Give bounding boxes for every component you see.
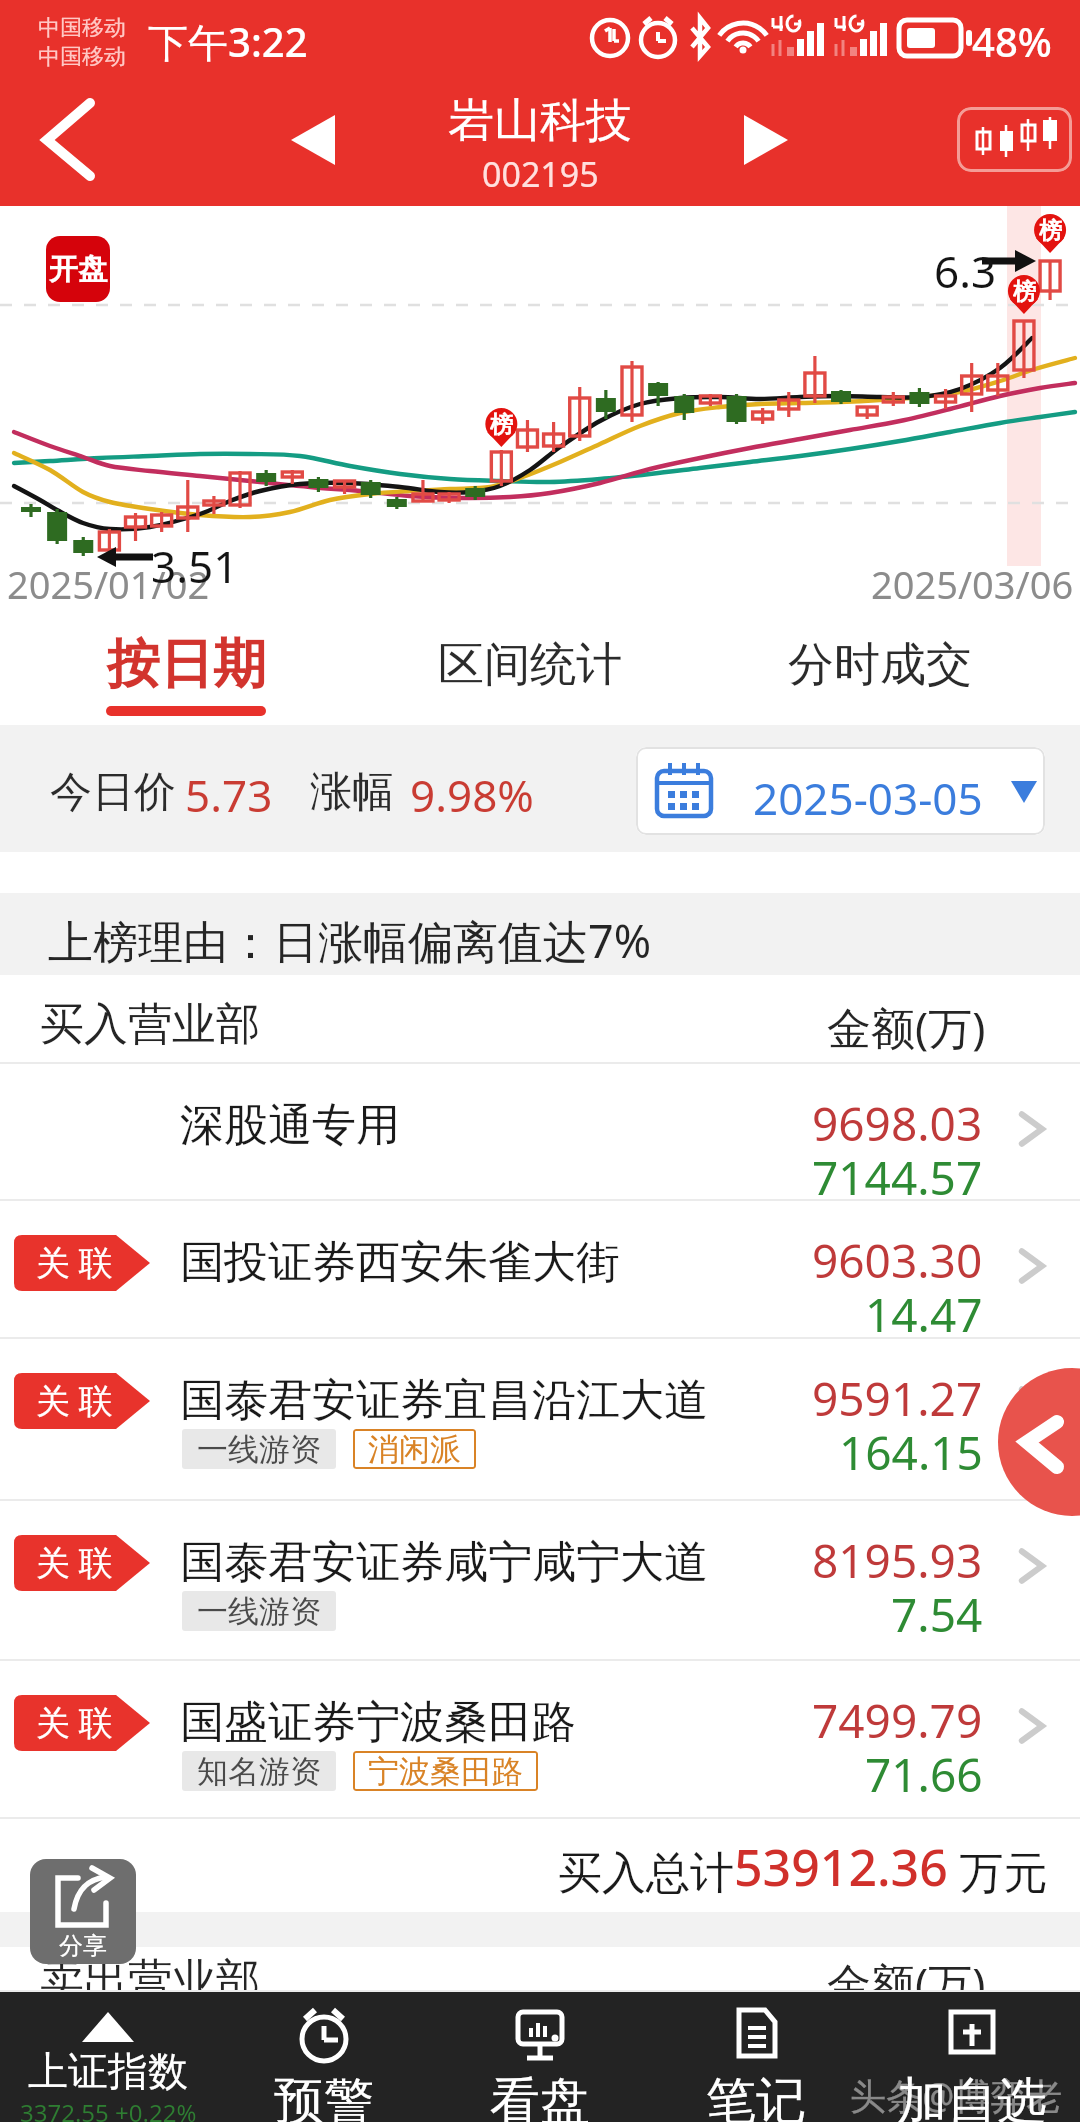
staticText: 榜 [1039, 216, 1062, 244]
button[interactable]: 收起 [998, 1368, 1080, 1516]
staticText: 岩山科技 [448, 92, 632, 150]
staticText: 知名游资 [197, 1752, 321, 1791]
staticText: 下午3:22 [148, 14, 308, 69]
button[interactable]: 关 联 [0, 1339, 1080, 1501]
staticText: 按日期 [107, 631, 266, 698]
staticText: 看盘 [490, 2070, 590, 2122]
button[interactable]: 分享 [30, 1859, 136, 1964]
staticText: 7144.57 [812, 1146, 983, 1209]
staticText: 涨幅 [310, 766, 394, 819]
staticText: 国盛证券宁波桑田路 [180, 1695, 576, 1750]
staticText: 53912.36 [734, 1833, 948, 1901]
staticText: 9.98% [410, 765, 534, 825]
staticText: 2025/01/02 [7, 558, 210, 610]
staticText: 关 联 [36, 1239, 113, 1285]
staticText: 中国移动 [38, 43, 126, 71]
staticText: 7.54 [891, 1583, 983, 1646]
staticText: 消闲派 [368, 1430, 461, 1469]
staticText: 164.15 [839, 1421, 983, 1484]
staticText: 9603.30 [812, 1229, 983, 1292]
staticText: 上榜理由：日涨幅偏离值达7% [48, 910, 652, 971]
staticText: 榜 [1013, 277, 1036, 305]
staticText: 金额(万) [827, 997, 986, 1057]
staticText: 关 联 [36, 1699, 113, 1745]
staticText: 一线游资 [197, 1592, 321, 1631]
staticText: 笔记 [706, 2070, 806, 2122]
button[interactable]: 下一只 [712, 90, 820, 202]
button[interactable]: 2025-03-05 [636, 747, 1045, 835]
staticText: 买入营业部 [40, 997, 260, 1052]
staticText: 8195.93 [812, 1529, 983, 1592]
staticText: 2025-03-05 [753, 768, 983, 828]
staticText: 榜 [490, 410, 513, 438]
staticText: 国泰君安证券咸宁咸宁大道 [180, 1535, 708, 1590]
staticText: 7499.79 [812, 1689, 983, 1752]
staticText: 上证指数 [28, 2046, 188, 2096]
staticText: 9591.27 [812, 1367, 983, 1430]
staticText: 金额(万) [827, 1953, 986, 1998]
button[interactable]: 关 联 [0, 1501, 1080, 1661]
staticText: 分时成交 [788, 636, 972, 694]
staticText: 加自选 [897, 2070, 1047, 2122]
staticText: 中国移动 [38, 14, 126, 42]
staticText: 9698.03 [812, 1092, 983, 1155]
staticText: 今日价 [50, 766, 176, 819]
button[interactable]: 关 联 [0, 1661, 1080, 1819]
staticText: 002195 [482, 151, 599, 197]
button[interactable]: 预警 [216, 1992, 432, 2122]
button[interactable]: 关 联 [0, 1201, 1080, 1339]
staticText: 万元 [948, 1841, 1048, 1901]
button[interactable]: 深股通专用 [0, 1064, 1080, 1201]
button[interactable]: 返回 [10, 86, 126, 206]
staticText: 头条@博弈老 [850, 2071, 1063, 2120]
staticText: 国泰君安证券宜昌沿江大道 [180, 1373, 708, 1428]
staticText: 6.3 [934, 241, 997, 301]
staticText: 关 联 [36, 1377, 113, 1423]
staticText: 区间统计 [438, 636, 622, 694]
button[interactable]: 按日期 [36, 603, 336, 725]
staticText: 3.51 [151, 536, 239, 596]
button[interactable]: 分时成交 [730, 603, 1030, 725]
staticText: 5.73 [185, 765, 273, 825]
staticText: 开盘 [49, 251, 107, 288]
button[interactable]: K线图 [957, 107, 1072, 172]
staticText: 71.66 [865, 1743, 983, 1806]
staticText: 买入总计 [558, 1846, 734, 1901]
staticText: 宁波桑田路 [368, 1752, 523, 1791]
button[interactable]: 笔记 [648, 1992, 864, 2122]
button[interactable]: 区间统计 [380, 603, 680, 725]
staticText: 3372.55 +0.22% [20, 2096, 197, 2122]
button[interactable]: 加自选 [864, 1992, 1080, 2122]
staticText: 关 联 [36, 1539, 113, 1585]
staticText: 卖出营业部 [40, 1953, 260, 1998]
staticText: 深股通专用 [180, 1098, 400, 1153]
button[interactable]: 看盘 [432, 1992, 648, 2122]
staticText: 一线游资 [197, 1430, 321, 1469]
button[interactable]: 上一只 [260, 90, 368, 202]
staticText: 预警 [274, 2070, 374, 2122]
button[interactable]: 上证指数 [0, 1992, 216, 2122]
staticText: 48% [972, 14, 1052, 68]
staticText: 14.47 [865, 1283, 983, 1346]
staticText: 分享 [59, 1931, 107, 1961]
staticText: 2025/03/06 [871, 558, 1074, 610]
staticText: 国投证券西安朱雀大街 [180, 1235, 620, 1290]
